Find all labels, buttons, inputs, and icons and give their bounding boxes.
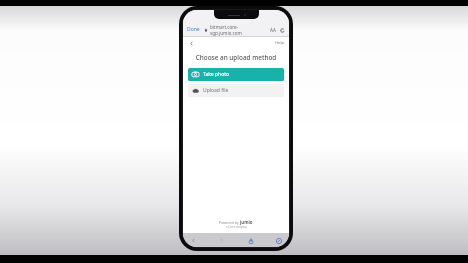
staticText: Help xyxy=(275,40,285,46)
staticText: Powered by xyxy=(219,220,240,225)
button[interactable]: Done xyxy=(187,26,200,33)
button[interactable]: Back xyxy=(187,39,195,47)
staticText: Take photo xyxy=(203,71,229,78)
staticText: bitmart.core-sgp.jumio.com xyxy=(210,24,270,36)
staticText: Upload file xyxy=(203,87,229,94)
button[interactable]: Reload page xyxy=(279,27,285,33)
button[interactable]: Tabs xyxy=(274,236,283,245)
staticText: Done xyxy=(187,26,200,33)
button[interactable]: Forward xyxy=(217,236,226,245)
staticText: a Ceres company xyxy=(226,225,247,229)
button[interactable]: Upload file xyxy=(188,84,284,97)
staticText: Choose an upload method xyxy=(183,53,289,62)
button[interactable]: Take photo xyxy=(188,68,284,81)
button[interactable]: Share xyxy=(246,236,255,245)
button[interactable]: Help xyxy=(275,40,285,46)
button[interactable]: Back xyxy=(189,236,198,245)
staticText: jumio xyxy=(240,219,253,225)
button[interactable]: Text size options xyxy=(270,27,276,33)
staticText: AA xyxy=(270,27,276,33)
